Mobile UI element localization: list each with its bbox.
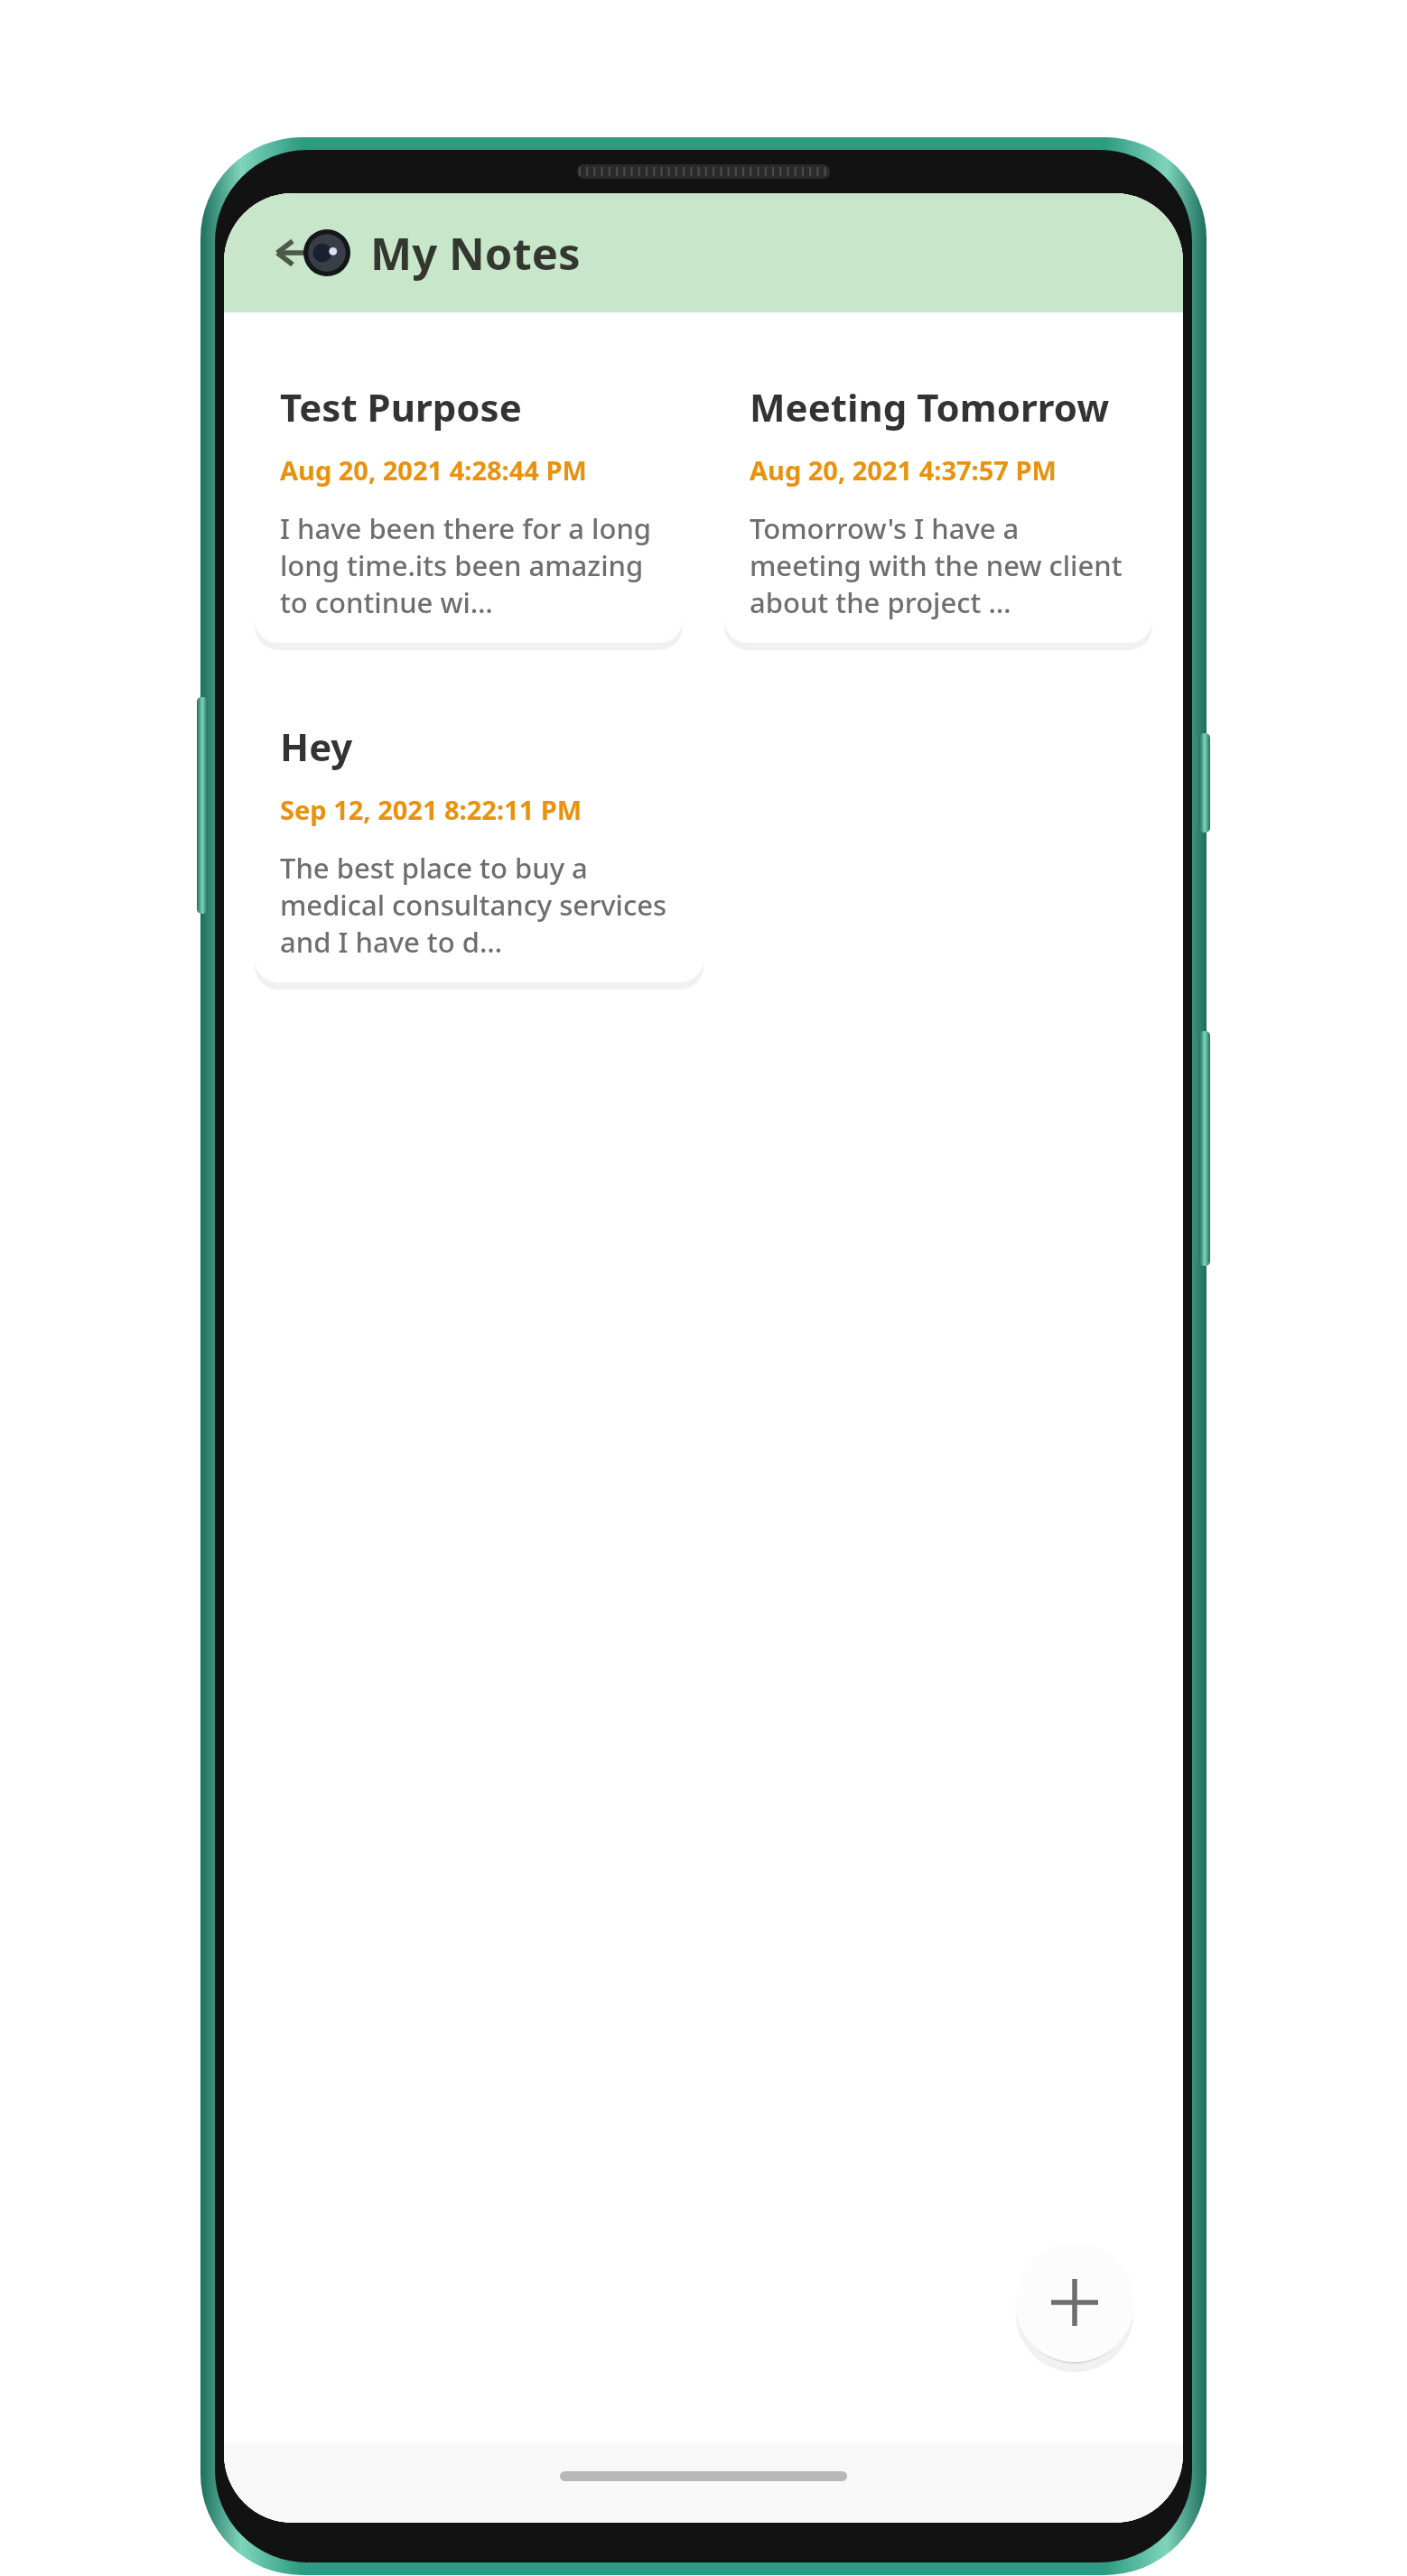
staticText: Test Purpose	[280, 381, 522, 432]
button[interactable]: Back	[264, 219, 331, 286]
staticText: Sep 12, 2021 8:22:11 PM	[280, 792, 582, 827]
button[interactable]: Hey	[255, 695, 703, 982]
button[interactable]: Test Purpose	[255, 356, 683, 643]
staticText: Tomorrow's I have a meeting with the new…	[750, 509, 1134, 621]
staticText: My Notes	[370, 223, 581, 284]
staticText: I have been there for a long long time.i…	[280, 509, 665, 621]
staticText: Aug 20, 2021 4:37:57 PM	[750, 452, 1057, 488]
staticText: The best place to buy a medical consulta…	[280, 849, 685, 961]
button[interactable]: Add note	[1015, 2243, 1134, 2362]
button[interactable]: Meeting Tomorrow	[724, 356, 1152, 643]
staticText: Aug 20, 2021 4:28:44 PM	[280, 452, 587, 488]
staticText: Meeting Tomorrow	[750, 381, 1110, 432]
staticText: Hey	[280, 721, 353, 772]
